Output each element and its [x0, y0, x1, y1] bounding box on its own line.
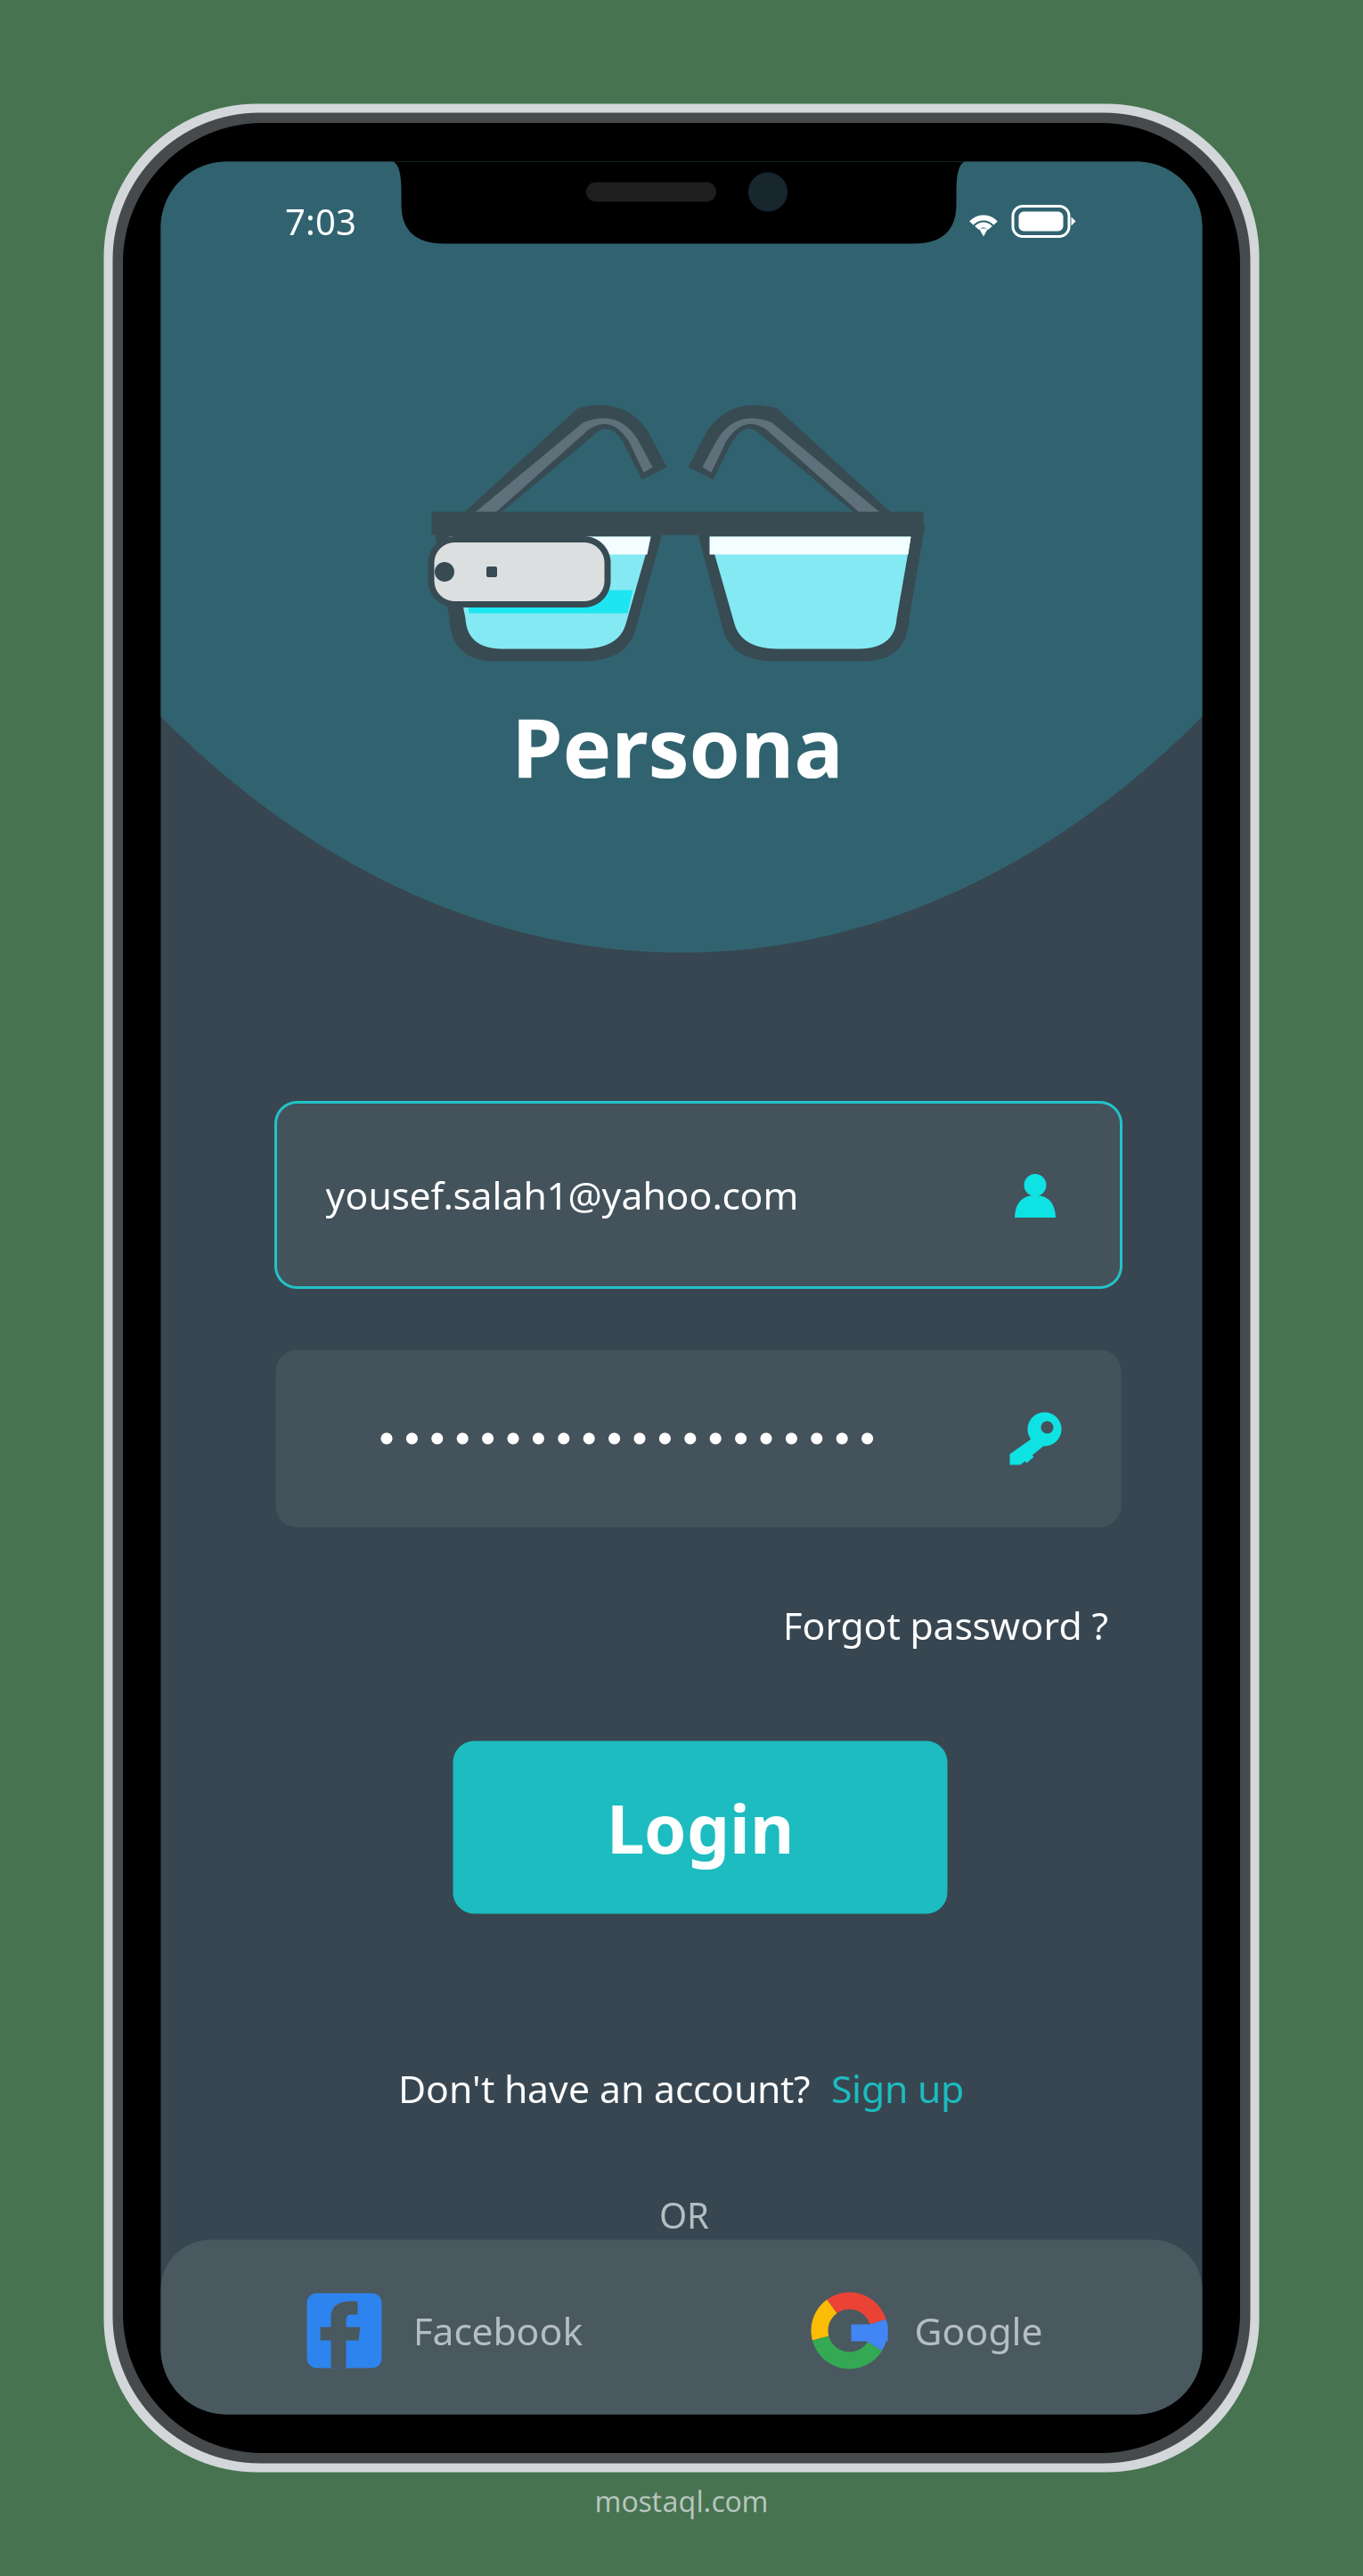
button[interactable]: Login: [453, 1741, 947, 1914]
button[interactable]: Sign up: [831, 2063, 964, 2114]
staticText: OR: [659, 2191, 709, 2238]
staticText: Forgot password ?: [783, 1600, 1109, 1650]
button[interactable]: [276, 1350, 1121, 1527]
staticText: mostaql.com: [595, 2482, 768, 2520]
staticText: Don't have an account?: [398, 2063, 811, 2114]
button[interactable]: Google: [811, 2292, 1043, 2369]
staticText: Sign up: [831, 2063, 964, 2114]
button[interactable]: yousef.salah1@yahoo.com: [276, 1102, 1121, 1288]
staticText: yousef.salah1@yahoo.com: [326, 1170, 799, 1220]
staticText: Google: [914, 2305, 1043, 2356]
staticText: Facebook: [413, 2305, 583, 2356]
staticText: 7:03: [285, 198, 356, 245]
button[interactable]: Forgot password ?: [783, 1600, 1109, 1650]
staticText: Login: [607, 1782, 794, 1872]
staticText: Persona: [512, 692, 843, 800]
button[interactable]: Facebook: [307, 2293, 583, 2368]
